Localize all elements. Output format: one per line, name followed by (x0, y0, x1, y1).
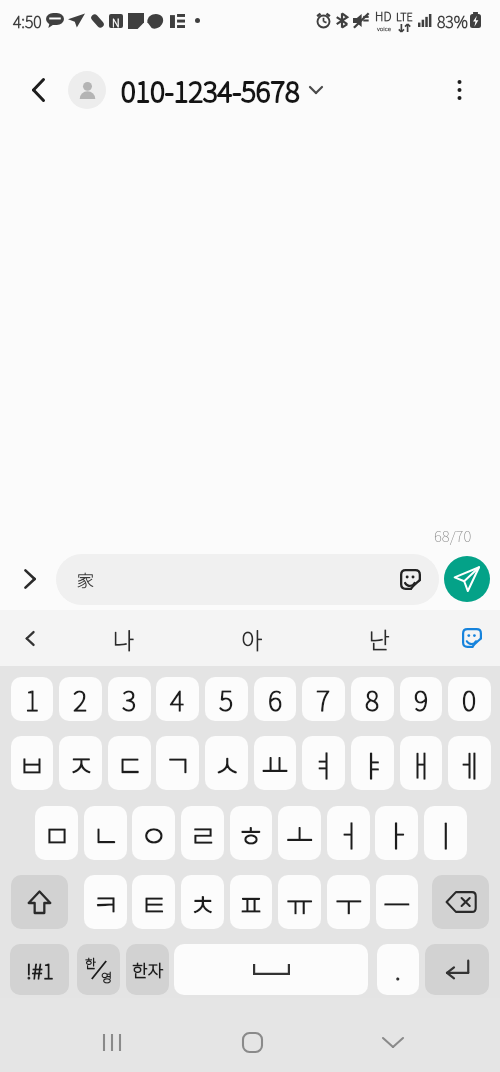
staticText: ㅜ (335, 881, 363, 924)
staticText: ㅣ (432, 812, 460, 855)
button[interactable]: Period (377, 944, 419, 995)
staticText: 8 (365, 680, 380, 719)
staticText: ㅁ (43, 812, 71, 855)
button[interactable]: 9 (400, 677, 442, 721)
button[interactable]: Conversation options (300, 74, 332, 106)
staticText: ㅠ (286, 881, 314, 924)
button[interactable]: ㅎ (230, 806, 272, 860)
button[interactable]: Hanja (126, 944, 169, 995)
button[interactable]: Korean English toggle (77, 944, 120, 995)
button[interactable]: ㅑ (351, 736, 394, 790)
button[interactable]: ㅊ (181, 875, 224, 929)
staticText: ㅗ (286, 812, 314, 855)
button[interactable]: 3 (108, 677, 151, 721)
button[interactable]: ㅋ (84, 875, 127, 929)
staticText: ㅗ (286, 812, 314, 855)
button[interactable]: ㅇ (132, 806, 175, 860)
button[interactable]: 나 (60, 610, 188, 666)
button[interactable]: ㅁ (35, 806, 78, 860)
button[interactable]: 난 (316, 610, 444, 666)
staticText: ㅁ (43, 812, 71, 855)
staticText: ㅋ (92, 881, 120, 924)
button[interactable]: Shift (11, 875, 68, 929)
button[interactable]: 4 (156, 677, 199, 721)
staticText: 한 (85, 954, 97, 971)
staticText: 7 (316, 680, 331, 719)
button[interactable]: ㄱ (156, 736, 199, 790)
button[interactable]: Backspace (432, 875, 489, 929)
button[interactable]: 7 (302, 677, 345, 721)
button[interactable]: ㅣ (424, 806, 467, 860)
button[interactable]: 家 (56, 554, 439, 605)
staticText: ㅍ (237, 881, 265, 924)
staticText: ㅓ (335, 812, 363, 855)
button[interactable]: ㅡ (376, 875, 418, 929)
button[interactable]: 아 (188, 610, 316, 666)
button[interactable]: 8 (351, 677, 394, 721)
staticText: 83% (437, 9, 468, 32)
staticText: 아 (241, 622, 263, 655)
staticText: ㅔ (456, 742, 484, 785)
button[interactable]: ㅛ (254, 736, 296, 790)
button[interactable]: ㅕ (302, 736, 345, 790)
staticText: 4 (170, 680, 185, 719)
staticText: 영 (101, 968, 113, 985)
staticText: 家 (77, 567, 94, 592)
button[interactable]: Symbols (10, 944, 69, 995)
staticText: LTE (396, 8, 413, 24)
button[interactable]: ㅏ (375, 806, 418, 860)
button[interactable]: ㅌ (132, 875, 175, 929)
staticText: ㅕ (310, 742, 338, 785)
button[interactable]: ㅅ (205, 736, 248, 790)
staticText: 9 (414, 680, 429, 719)
button[interactable]: 2 (59, 677, 102, 721)
staticText: ㅕ (310, 742, 338, 785)
button[interactable]: Back (16, 68, 60, 112)
staticText: ㅡ (383, 881, 411, 924)
button[interactable]: ㄹ (181, 806, 224, 860)
button[interactable]: Stickers (444, 610, 500, 666)
staticText: ㅜ (335, 881, 363, 924)
staticText: ㄴ (92, 812, 120, 855)
button[interactable]: Back (365, 1018, 421, 1066)
button[interactable]: ㅗ (278, 806, 321, 860)
staticText: LTE (396, 8, 413, 24)
staticText: 1 (25, 680, 40, 719)
staticText: ㄷ (116, 742, 144, 785)
button[interactable]: ㅐ (400, 736, 442, 790)
button[interactable]: ㅠ (278, 875, 321, 929)
staticText: ㅔ (456, 742, 484, 785)
staticText: 010-1234-5678 (121, 70, 300, 111)
staticText: ㅇ (140, 812, 168, 855)
button[interactable]: More input options (0, 553, 56, 605)
button[interactable]: ㅈ (59, 736, 102, 790)
button[interactable]: Previous suggestions (0, 610, 60, 666)
staticText: 9 (414, 680, 429, 719)
button[interactable]: 1 (11, 677, 53, 721)
button[interactable]: ㅂ (11, 736, 53, 790)
button[interactable]: ㅔ (448, 736, 491, 790)
staticText: ㄱ (164, 742, 192, 785)
button[interactable]: 6 (254, 677, 296, 721)
button[interactable]: Recent apps (84, 1018, 140, 1066)
button[interactable]: ㅓ (327, 806, 370, 860)
staticText: 83% (437, 9, 468, 32)
staticText: 6 (268, 680, 283, 719)
button[interactable]: More options (437, 68, 481, 112)
button[interactable]: Send (444, 556, 490, 602)
button[interactable]: 5 (205, 677, 248, 721)
button[interactable]: 0 (448, 677, 491, 721)
button[interactable]: Home (224, 1018, 280, 1066)
button[interactable]: ㄷ (108, 736, 151, 790)
staticText: ㅛ (261, 742, 289, 785)
staticText: ㄴ (92, 812, 120, 855)
button[interactable]: ㄴ (84, 806, 127, 860)
button[interactable]: ㅍ (230, 875, 272, 929)
staticText: ㅣ (432, 812, 460, 855)
button[interactable]: Enter (425, 944, 489, 995)
staticText: ㅅ (213, 742, 241, 785)
staticText: ㅊ (189, 881, 217, 924)
staticText: 한자 (132, 957, 164, 982)
button[interactable]: ㅜ (327, 875, 370, 929)
button[interactable]: Space (174, 944, 368, 995)
